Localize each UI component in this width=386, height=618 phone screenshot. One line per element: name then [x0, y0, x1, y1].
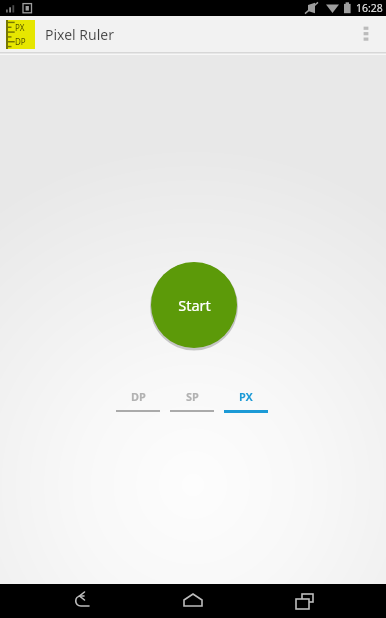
- button[interactable]: PX: [224, 389, 268, 413]
- button[interactable]: More options: [348, 16, 384, 52]
- button[interactable]: Home: [163, 584, 223, 618]
- button[interactable]: Back: [52, 584, 112, 618]
- staticText: DP: [131, 389, 146, 404]
- button[interactable]: SP: [170, 389, 214, 412]
- staticText: PX: [239, 389, 253, 404]
- staticText: Pixel Ruler: [45, 25, 115, 44]
- button[interactable]: Start: [151, 262, 237, 348]
- staticText: SP: [186, 389, 199, 404]
- button[interactable]: DP: [116, 389, 160, 412]
- staticText: Start: [178, 295, 211, 315]
- staticText: 16:28: [356, 1, 383, 15]
- staticText: PX: [15, 22, 25, 33]
- staticText: DP: [15, 36, 26, 47]
- button[interactable]: Recent apps: [275, 584, 335, 618]
